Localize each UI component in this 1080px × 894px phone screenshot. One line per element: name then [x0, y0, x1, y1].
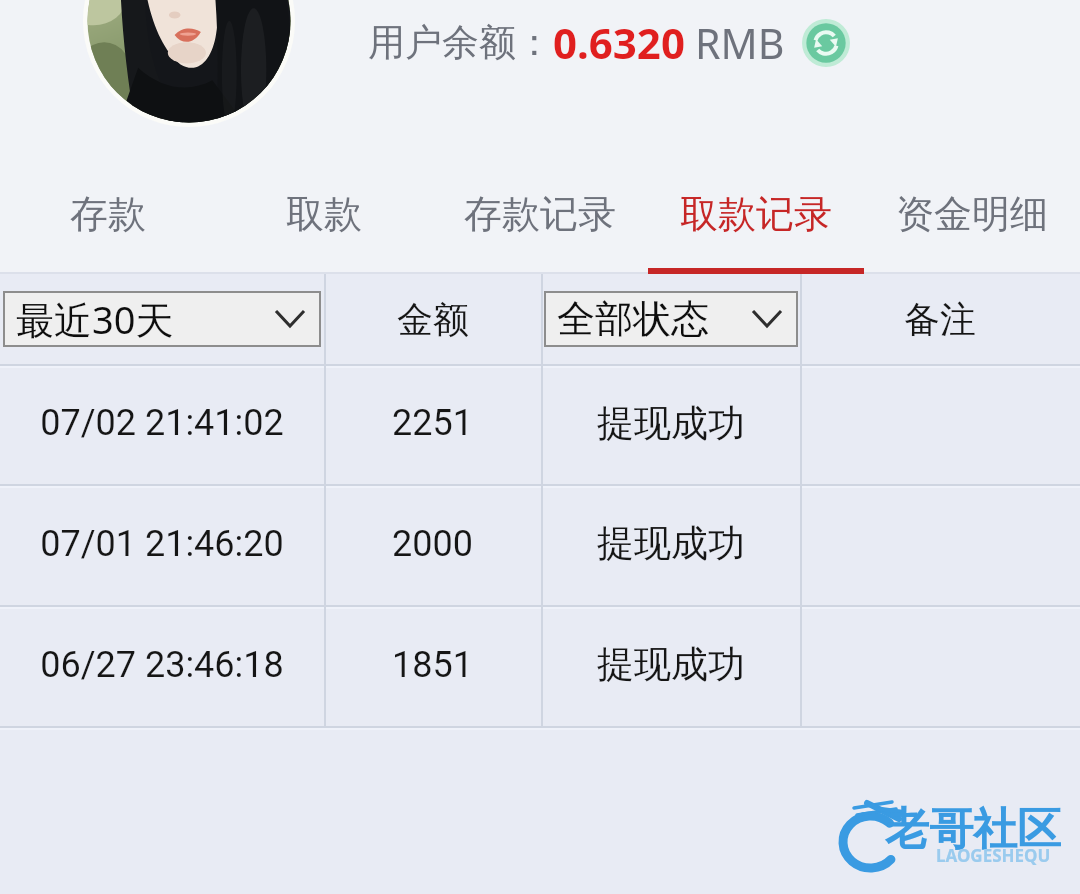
- staticText: 取款记录: [680, 190, 832, 238]
- staticText: 2251: [392, 402, 473, 444]
- button[interactable]: 1851: [324, 609, 541, 726]
- button[interactable]: 取款记录: [648, 160, 864, 274]
- staticText: 金额: [397, 297, 469, 342]
- staticText: 存款记录: [464, 190, 616, 238]
- button[interactable]: User avatar: [83, 0, 295, 127]
- staticText: 提现成功: [597, 641, 745, 688]
- staticText: 最近30天: [16, 293, 174, 345]
- staticText: 提现成功: [597, 400, 745, 447]
- button[interactable]: 07/02 21:41:02: [0, 368, 324, 484]
- staticText: 用户余额: [368, 19, 516, 66]
- button[interactable]: 存款记录: [432, 160, 648, 274]
- button[interactable]: 06/27 23:46:18: [0, 609, 324, 726]
- staticText: 提现成功: [597, 520, 745, 567]
- staticText: 1851: [392, 644, 473, 686]
- button[interactable]: Refresh balance: [801, 18, 851, 68]
- button[interactable]: 2251: [324, 368, 541, 484]
- button[interactable]: 最近30天: [3, 291, 321, 347]
- button[interactable]: 2000: [324, 488, 541, 605]
- staticText: ：: [516, 19, 553, 66]
- staticText: 2000: [392, 523, 473, 565]
- button[interactable]: 提现成功: [541, 488, 800, 605]
- staticText: 存款: [70, 190, 146, 238]
- button[interactable]: 全部状态: [544, 291, 798, 347]
- staticText: 取款: [286, 190, 362, 238]
- staticText: 资金明细: [896, 190, 1048, 238]
- staticText: 老哥社区: [885, 802, 1061, 857]
- button[interactable]: 07/01 21:46:20: [0, 488, 324, 605]
- button[interactable]: 取款: [216, 160, 432, 274]
- staticText: 07/02 21:41:02: [40, 402, 284, 444]
- staticText: RMB: [695, 15, 785, 71]
- button[interactable]: 资金明细: [864, 160, 1080, 274]
- staticText: LAOGESHEQU: [936, 844, 1051, 867]
- button[interactable]: 存款: [0, 160, 216, 274]
- staticText: 全部状态: [557, 295, 709, 343]
- staticText: 07/01 21:46:20: [40, 523, 284, 565]
- staticText: 0.6320: [553, 14, 685, 71]
- button[interactable]: 提现成功: [541, 609, 800, 726]
- button[interactable]: 提现成功: [541, 368, 800, 484]
- staticText: 06/27 23:46:18: [40, 644, 284, 686]
- staticText: 备注: [904, 297, 976, 342]
